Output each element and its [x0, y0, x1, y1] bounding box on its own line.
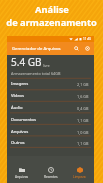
- button[interactable]: Search: [72, 44, 81, 53]
- staticText: 2,1 GB: [77, 82, 89, 87]
- button[interactable]: Recentes: [36, 156, 65, 183]
- button[interactable]: Áudio: [7, 102, 94, 114]
- button[interactable]: Arquivos: [7, 126, 94, 138]
- button[interactable]: Limpeza: [65, 156, 94, 183]
- staticText: Vídeos: [11, 93, 25, 99]
- staticText: Outros: [11, 140, 25, 146]
- staticText: 1,1 GB: [77, 141, 89, 146]
- button[interactable]: Vídeos: [7, 90, 94, 102]
- staticText: Áudio: [11, 105, 23, 111]
- button[interactable]: Documentos: [7, 114, 94, 126]
- staticText: 1,0 GB: [77, 130, 89, 135]
- staticText: Imagens: [11, 81, 29, 87]
- staticText: Arquivos: [15, 175, 29, 179]
- staticText: 1,6 GB: [77, 94, 89, 99]
- staticText: Análise: [35, 3, 69, 16]
- staticText: Recentes: [44, 175, 58, 179]
- staticText: de armazenamento: [6, 16, 97, 29]
- staticText: 1,1 GB: [77, 118, 89, 123]
- button[interactable]: Settings: [83, 44, 92, 53]
- staticText: Arquivos: [11, 129, 29, 135]
- staticText: 11:45: [83, 37, 92, 41]
- staticText: 5.4 GB: [11, 55, 42, 69]
- staticText: 0,4 GB: [77, 106, 89, 111]
- staticText: Gerenciador de Arquivos: [12, 46, 61, 52]
- button[interactable]: Imagens: [7, 78, 94, 90]
- button[interactable]: Outros: [7, 138, 94, 148]
- button[interactable]: Arquivos: [7, 156, 36, 183]
- staticText: Documentos: [11, 117, 37, 123]
- staticText: Limpeza: [73, 175, 86, 179]
- staticText: livre: [43, 63, 50, 68]
- staticText: Armazenamento total 64GB: [11, 71, 61, 76]
